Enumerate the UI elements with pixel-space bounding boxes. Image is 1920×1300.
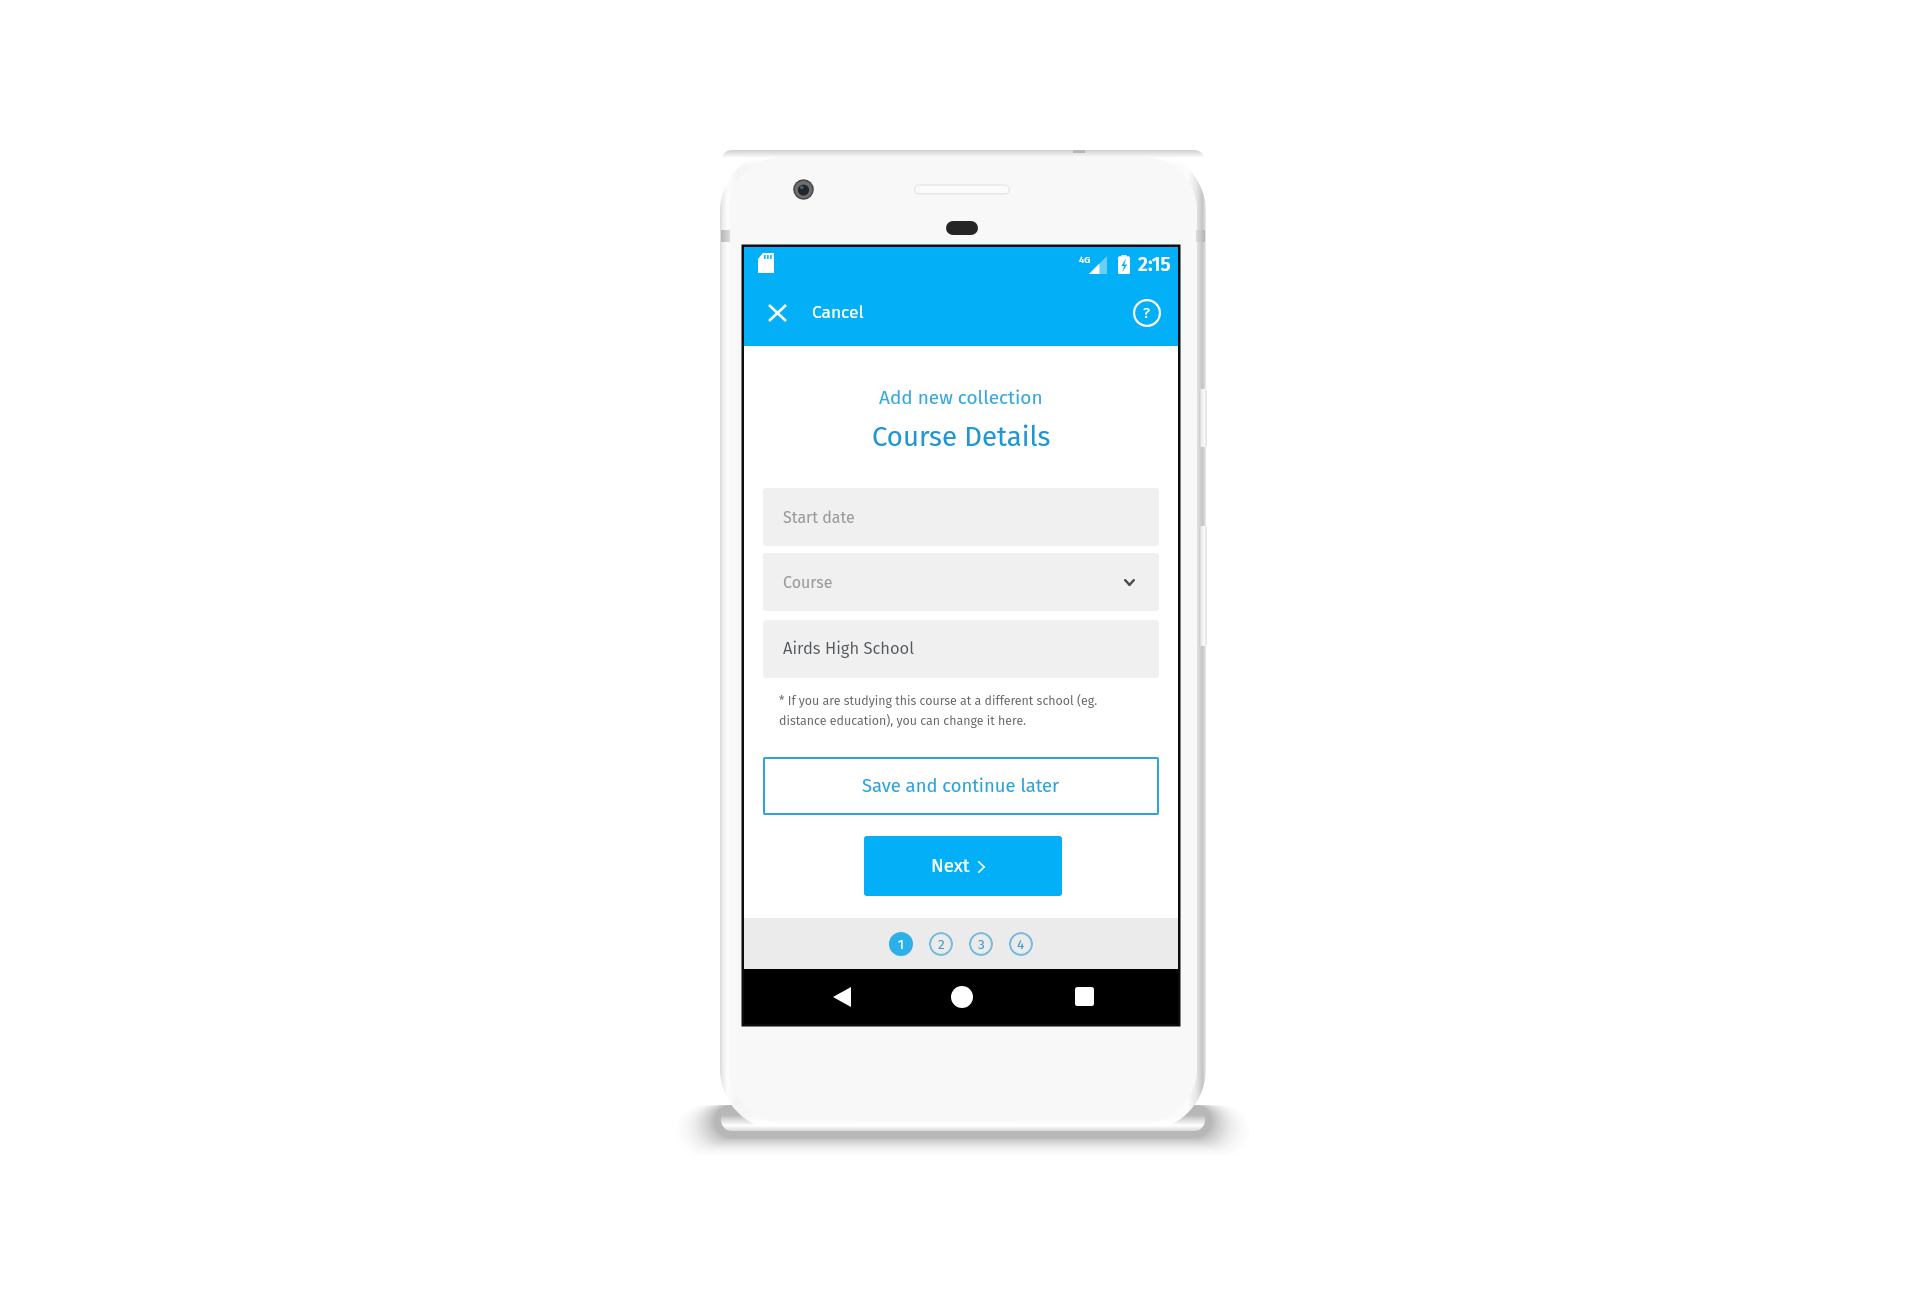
staticText: Save and continue later [862,775,1060,797]
button[interactable]: 2 [929,932,953,956]
button[interactable]: Cancel [744,290,878,335]
other: Cancel [769,305,786,321]
button[interactable]: Next [864,836,1062,896]
button[interactable]: 1 [889,932,913,956]
button[interactable]: Back [819,974,864,1019]
button[interactable]: Recent apps [1062,974,1107,1019]
button[interactable]: Airds High School [763,620,1159,678]
staticText: Course [783,573,833,592]
staticText: Start date [783,508,855,527]
staticText: Course Details [872,420,1051,453]
button[interactable]: 4 [1009,932,1033,956]
staticText: * If you are studying this course at a d… [779,693,1098,728]
button[interactable]: Course [763,553,1159,611]
button[interactable]: Save and continue later [763,757,1159,815]
button[interactable]: 3 [969,932,993,956]
staticText: Next [931,855,970,877]
staticText: ? [1143,304,1150,322]
staticText: Airds High School [783,639,915,659]
staticText: Cancel [812,302,864,323]
staticText: 4G [1079,254,1091,265]
staticText: Add new collection [879,386,1043,409]
staticText: 2 [938,936,945,952]
staticText: 1 [898,936,904,952]
staticText: 2:15 [1138,253,1171,276]
staticText: 4 [1017,936,1025,952]
button[interactable]: Home [939,974,984,1019]
button[interactable]: Help [1130,296,1163,329]
button[interactable]: Start date [763,488,1159,546]
staticText: 3 [978,936,985,952]
